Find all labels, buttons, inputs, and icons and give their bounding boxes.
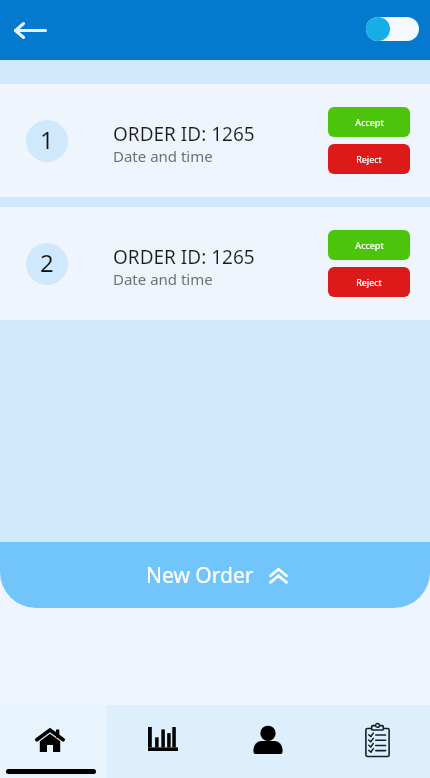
staticText: 2	[40, 246, 54, 279]
staticText: ORDER ID: 1265	[113, 244, 255, 270]
button[interactable]: New Order	[0, 542, 430, 608]
staticText: Reject	[356, 153, 382, 165]
staticText: New Order	[146, 561, 254, 590]
button[interactable]: Reject	[328, 144, 410, 174]
button[interactable]: Statistics	[107, 705, 214, 778]
staticText: Date and time	[113, 146, 213, 166]
staticText: Date and time	[113, 269, 213, 289]
staticText: Accept	[355, 239, 384, 251]
button[interactable]: Orders	[322, 705, 430, 778]
staticText: Reject	[356, 276, 382, 288]
staticText: Accept	[355, 116, 384, 128]
staticText: 1	[40, 123, 54, 156]
button[interactable]: Back	[4, 4, 56, 56]
button[interactable]: Profile	[214, 705, 322, 778]
button[interactable]: Home	[0, 705, 107, 778]
button[interactable]: Accept	[328, 107, 410, 137]
button[interactable]: Reject	[328, 267, 410, 297]
button[interactable]: 1	[0, 84, 430, 197]
button[interactable]: Accept	[328, 230, 410, 260]
staticText: ORDER ID: 1265	[113, 121, 255, 147]
button[interactable]: Toggle availability	[366, 17, 419, 41]
button[interactable]: 2	[0, 207, 430, 320]
